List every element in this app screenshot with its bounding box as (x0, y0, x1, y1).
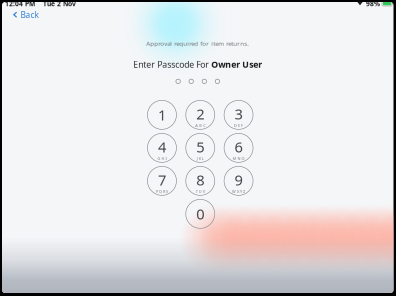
staticText: P Q R S (156, 189, 168, 194)
button[interactable]: 0 (181, 197, 219, 230)
staticText: M N O (233, 156, 245, 161)
staticText: 7 (158, 170, 166, 190)
staticText: Enter Passcode For (133, 59, 211, 70)
staticText: 4 (158, 137, 166, 157)
staticText: 0 (196, 204, 204, 224)
staticText: 1 (158, 105, 166, 125)
button[interactable]: 3 (219, 98, 258, 131)
staticText: 5 (196, 137, 204, 157)
staticText: Tue 2 Nov (43, 0, 76, 8)
staticText: Owner User (211, 59, 262, 70)
staticText: 8 (196, 170, 204, 190)
staticText: Back (20, 9, 38, 20)
staticText: 12:04 PM (5, 0, 35, 8)
button[interactable]: 6 (219, 131, 258, 164)
staticText: W X Y Z (232, 189, 245, 194)
button[interactable]: 7 (143, 164, 181, 197)
button[interactable]: 2 (181, 98, 219, 131)
staticText: 3 (235, 104, 243, 124)
staticText: Approval required for item returns. (146, 39, 249, 48)
button[interactable]: Back (2, 5, 46, 24)
button[interactable]: 9 (219, 164, 258, 197)
staticText: D E F (234, 123, 243, 128)
button[interactable]: 4 (143, 131, 181, 164)
button[interactable]: 1 (143, 98, 181, 131)
staticText: 6 (235, 137, 243, 157)
staticText: 9 (235, 170, 243, 190)
staticText: T U V (196, 189, 205, 194)
staticText: G H I (157, 156, 166, 161)
staticText: 2 (196, 104, 204, 124)
button[interactable]: 5 (181, 131, 219, 164)
staticText: J K L (197, 156, 204, 161)
staticText: 98% (366, 0, 380, 8)
staticText: A B C (195, 123, 205, 128)
button[interactable]: 8 (181, 164, 219, 197)
